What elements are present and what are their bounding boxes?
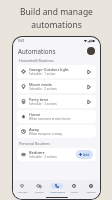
staticText: automations	[31, 19, 82, 31]
staticText: Devices	[35, 190, 44, 193]
staticText: Garage Outdoor light	[29, 67, 69, 72]
staticText: Schedule · 2 actions	[29, 87, 57, 91]
button[interactable]: Run Garage Outdoor light	[86, 69, 92, 75]
staticText: Schedule · 1 action	[29, 72, 56, 76]
button[interactable]: Account	[87, 47, 95, 55]
button[interactable]: Party time	[17, 95, 96, 108]
button[interactable]: Settings	[83, 183, 99, 193]
staticText: 9:41	[18, 39, 25, 43]
staticText: Home	[29, 112, 41, 117]
staticText: Settings	[86, 190, 96, 193]
button[interactable]: Movie mode	[17, 80, 96, 93]
staticText: Automations	[18, 47, 56, 55]
staticText: Personal Routines	[19, 141, 51, 146]
staticText: Party time	[29, 97, 49, 102]
button[interactable]: Automations	[49, 183, 65, 193]
staticText: Away	[29, 127, 39, 132]
staticText: Automations	[50, 190, 65, 193]
staticText: When everyone is away	[29, 132, 62, 136]
staticText: Bedtime	[29, 150, 45, 155]
staticText: Movie mode	[29, 82, 52, 87]
button[interactable]: Favorites	[14, 183, 30, 193]
staticText: When someone arrives home	[29, 117, 71, 121]
button[interactable]: Bedtime	[17, 148, 96, 161]
button[interactable]: Home	[17, 110, 96, 123]
staticText: Schedule · 2 actions	[29, 155, 57, 159]
button[interactable]: Add	[76, 150, 93, 159]
button[interactable]: Devices	[31, 183, 47, 193]
staticText: Schedule · 3 actions	[29, 102, 57, 106]
staticText: Add	[83, 152, 90, 157]
staticText: Household Routines	[19, 58, 54, 63]
staticText: Activity	[70, 190, 79, 193]
button[interactable]: Run Movie mode	[86, 84, 92, 90]
staticText: Favorites	[17, 190, 28, 193]
button[interactable]: Run Party time	[86, 99, 92, 105]
button[interactable]: Garage Outdoor light	[17, 65, 96, 78]
button[interactable]: Activity	[66, 183, 82, 193]
staticText: Build and manage	[20, 6, 93, 18]
button[interactable]: Away	[17, 125, 96, 138]
